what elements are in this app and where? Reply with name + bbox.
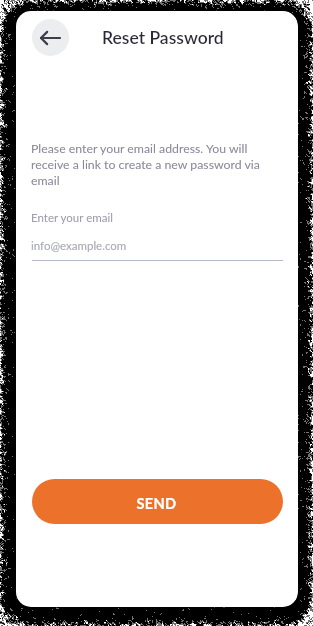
staticText: Enter your email (31, 211, 113, 225)
staticText: Please enter your email address. You wil… (31, 141, 263, 188)
staticText: Reset Password (102, 27, 224, 48)
button[interactable]: SEND (32, 479, 283, 524)
staticText: SEND (136, 495, 177, 513)
staticText: info@example.com (31, 239, 127, 253)
button[interactable]: Back (32, 19, 69, 56)
